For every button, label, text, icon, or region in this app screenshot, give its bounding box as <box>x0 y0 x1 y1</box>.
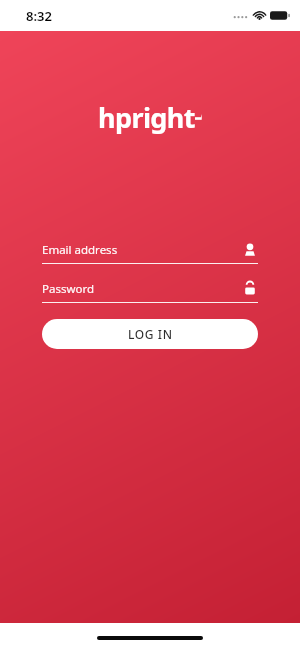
button[interactable]: Email address <box>42 239 258 264</box>
staticText: 8:32 <box>26 7 52 25</box>
staticText: LOG IN <box>128 326 173 342</box>
button[interactable]: LOG IN <box>42 319 258 349</box>
staticText: Email address <box>42 242 118 258</box>
button[interactable]: Password <box>42 278 258 303</box>
staticText: hpright <box>98 99 195 136</box>
staticText: Password <box>42 281 95 297</box>
other: Password <box>242 281 258 297</box>
other: Email address <box>242 242 258 258</box>
